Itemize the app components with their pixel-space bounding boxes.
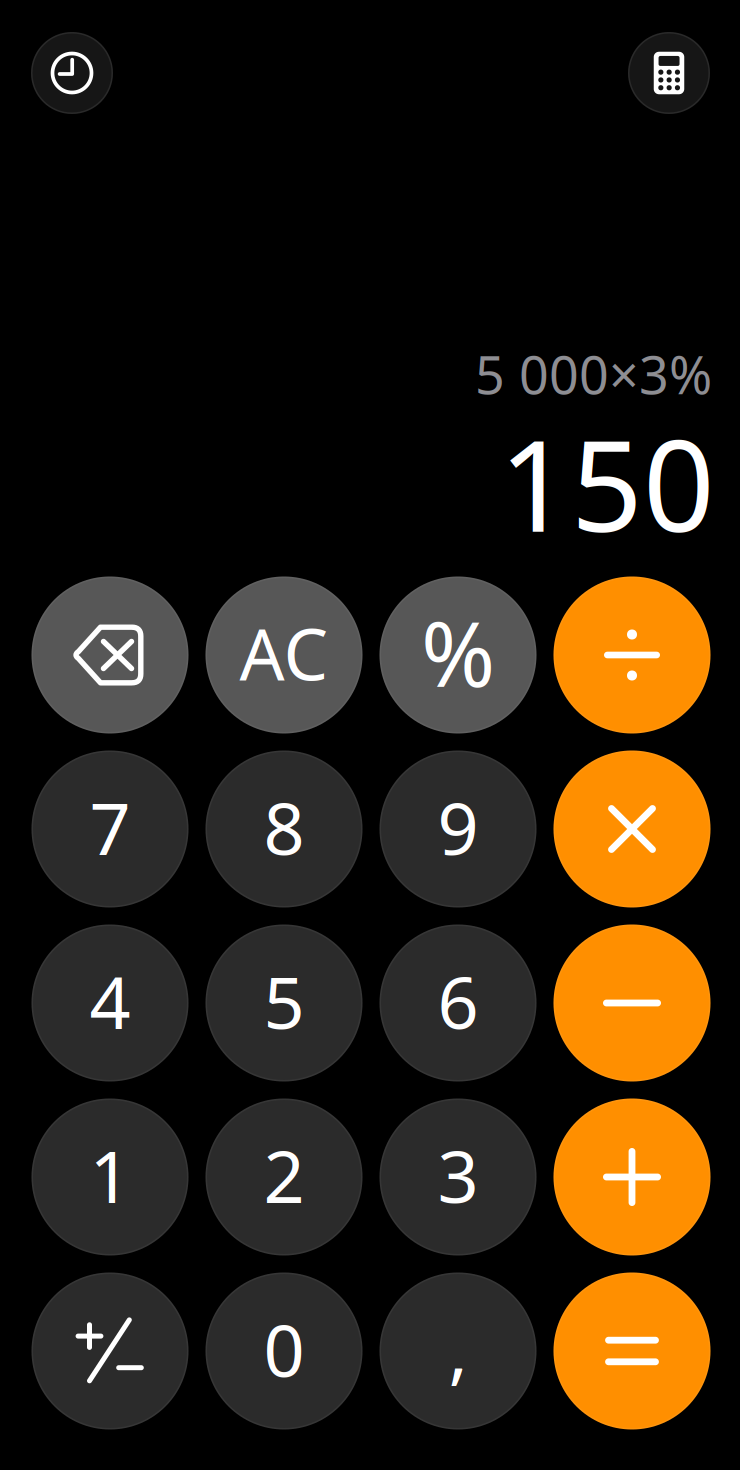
- button[interactable]: ,: [379, 1272, 536, 1429]
- button[interactable]: Add: [553, 1098, 710, 1255]
- staticText: 9: [437, 779, 478, 875]
- button[interactable]: Subtract: [553, 924, 710, 1081]
- button[interactable]: 5: [205, 924, 362, 1081]
- staticText: AC: [239, 606, 328, 700]
- staticText: 4: [89, 953, 130, 1049]
- staticText: ,: [448, 1301, 467, 1397]
- button[interactable]: 9: [379, 750, 536, 907]
- staticText: 2: [263, 1127, 304, 1223]
- staticText: 5: [263, 953, 304, 1049]
- staticText: 7: [89, 779, 130, 875]
- button[interactable]: History: [31, 32, 113, 114]
- button[interactable]: %: [379, 576, 536, 733]
- staticText: 150: [499, 400, 715, 566]
- staticText: 0: [263, 1301, 304, 1397]
- staticText: 8: [263, 779, 304, 875]
- button[interactable]: Multiply: [553, 750, 710, 907]
- button[interactable]: Delete: [31, 576, 188, 733]
- button[interactable]: 7: [31, 750, 188, 907]
- button[interactable]: 0: [205, 1272, 362, 1429]
- button[interactable]: Plus minus: [31, 1272, 188, 1429]
- button[interactable]: AC: [205, 576, 362, 733]
- staticText: 3: [437, 1127, 478, 1223]
- button[interactable]: 8: [205, 750, 362, 907]
- button[interactable]: 4: [31, 924, 188, 1081]
- button[interactable]: 6: [379, 924, 536, 1081]
- button[interactable]: Calculator: [628, 32, 710, 114]
- button[interactable]: Divide: [553, 576, 710, 733]
- staticText: 5 000×3%: [475, 339, 712, 409]
- staticText: 6: [437, 953, 478, 1049]
- button[interactable]: 1: [31, 1098, 188, 1255]
- staticText: %: [421, 593, 495, 711]
- button[interactable]: 3: [379, 1098, 536, 1255]
- button[interactable]: Equals: [553, 1272, 710, 1429]
- staticText: 1: [89, 1127, 130, 1223]
- button[interactable]: 2: [205, 1098, 362, 1255]
